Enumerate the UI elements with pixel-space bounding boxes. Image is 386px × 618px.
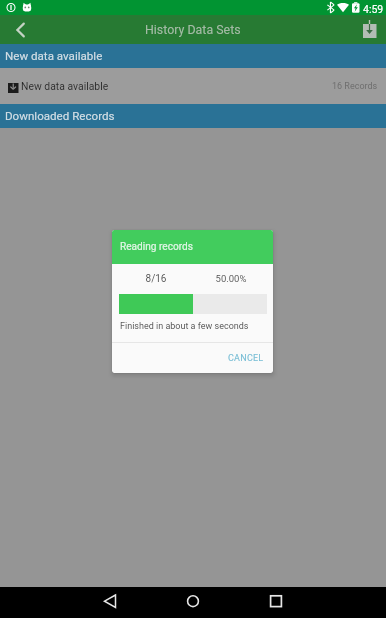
button[interactable]: New data available xyxy=(0,68,386,104)
staticText: 8/16 xyxy=(136,273,176,285)
button[interactable]: Back xyxy=(0,15,40,44)
staticText: Reading records xyxy=(120,241,193,253)
staticText: 4:59 xyxy=(363,3,384,15)
staticText: 50.00% xyxy=(211,273,251,284)
staticText: Downloaded Records xyxy=(5,109,115,123)
button[interactable]: CANCEL xyxy=(216,347,273,369)
staticText: CANCEL xyxy=(228,353,264,364)
button[interactable]: Download xyxy=(358,18,382,42)
staticText: Finished in about a few seconds xyxy=(120,321,249,332)
staticText: 16 Records xyxy=(332,81,378,92)
staticText: New data available xyxy=(5,49,103,63)
staticText: History Data Sets xyxy=(145,22,241,37)
button[interactable]: Recents xyxy=(256,587,296,618)
button[interactable]: Home xyxy=(173,587,213,618)
button[interactable]: Back xyxy=(90,587,130,618)
staticText: New data available xyxy=(21,80,109,92)
